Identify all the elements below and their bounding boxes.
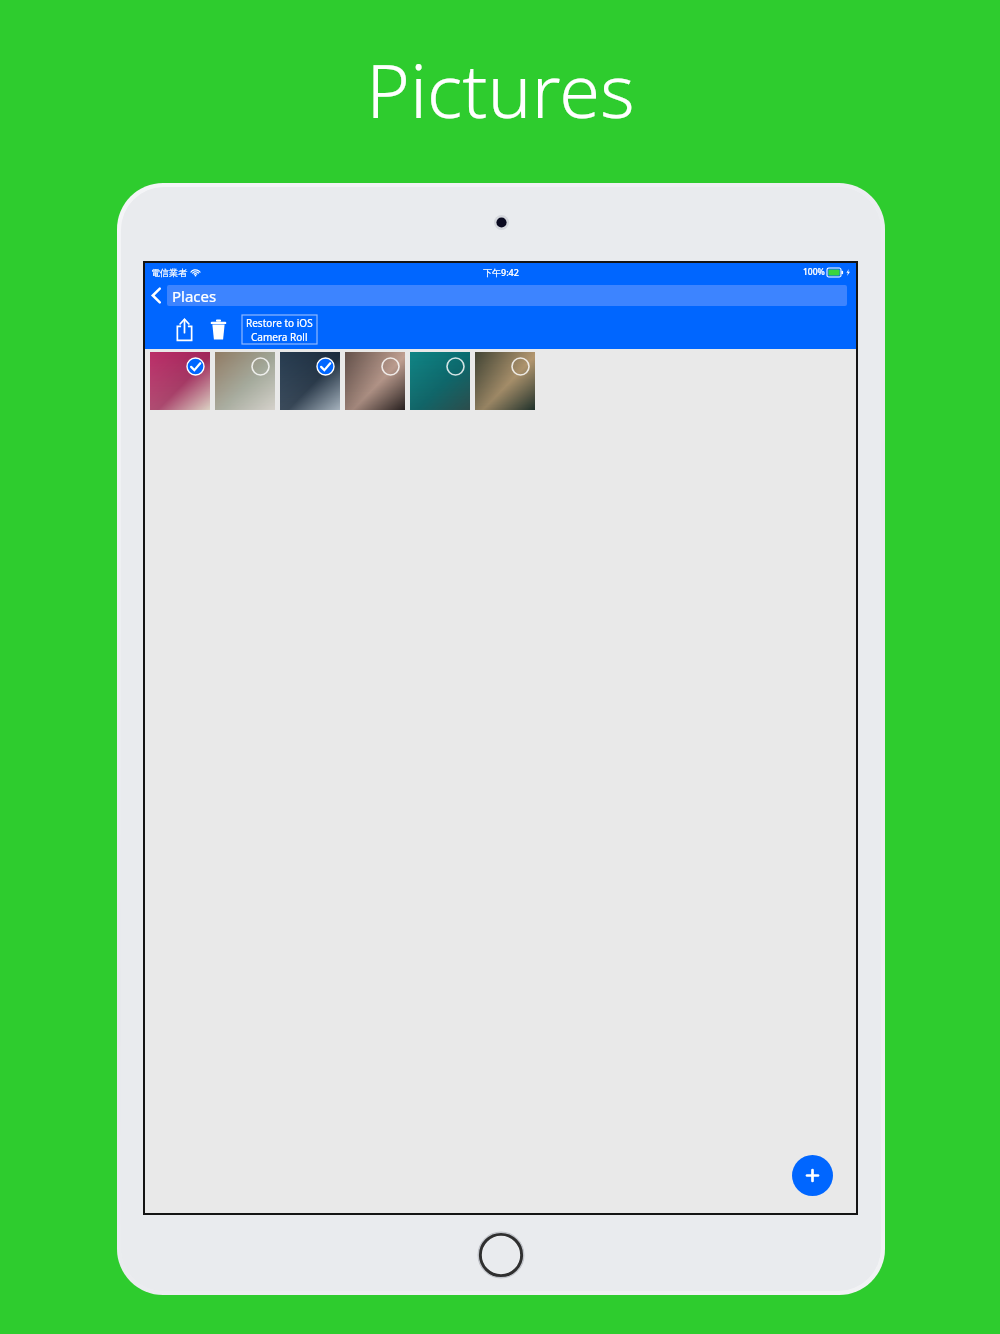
button[interactable]: Places	[167, 285, 847, 306]
staticText: Places	[172, 286, 217, 306]
staticText: 100%	[803, 266, 825, 278]
button[interactable]: Home	[477, 1231, 525, 1279]
button[interactable]: Share	[170, 313, 198, 345]
button[interactable]: Back	[145, 281, 167, 309]
staticText: Pictures	[366, 39, 635, 140]
staticText: Camera Roll	[251, 330, 308, 344]
button[interactable]: Photo	[410, 352, 470, 410]
button[interactable]: Photo	[150, 352, 210, 410]
staticText: 電信業者	[151, 267, 187, 278]
staticText: Restore to iOS	[246, 316, 313, 330]
button[interactable]: Delete	[204, 313, 232, 345]
button[interactable]: Restore to iOS	[239, 315, 320, 344]
button[interactable]: Add	[792, 1155, 833, 1196]
button[interactable]: Photo	[345, 352, 405, 410]
button[interactable]: Photo	[215, 352, 275, 410]
staticText: 下午9:42	[483, 266, 519, 278]
button[interactable]: Photo	[475, 352, 535, 410]
button[interactable]: Photo	[280, 352, 340, 410]
